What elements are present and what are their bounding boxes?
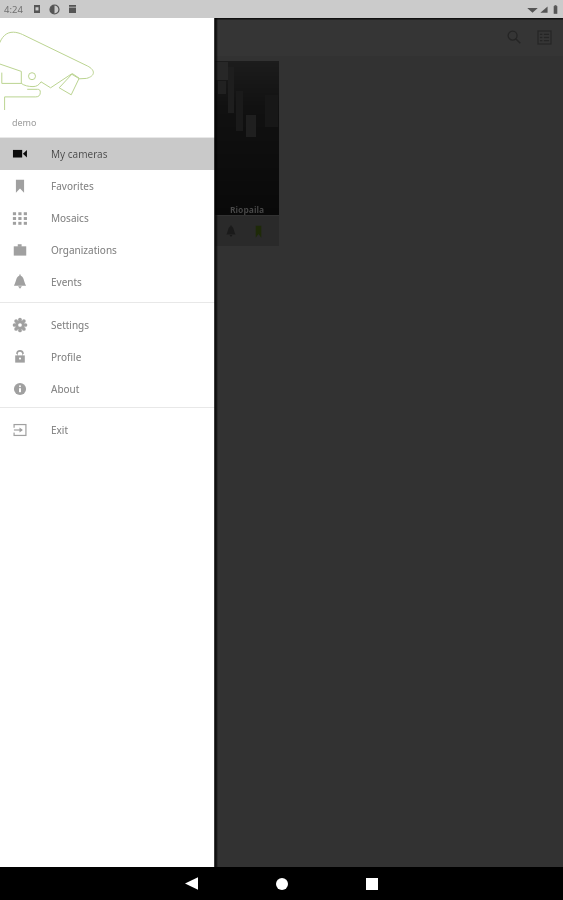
staticText: Mosaics <box>51 211 89 225</box>
staticText: About <box>51 382 80 396</box>
button[interactable]: Exit <box>0 414 215 446</box>
staticText: demo <box>12 116 37 128</box>
staticText: Profile <box>51 350 82 364</box>
staticText: My cameras <box>51 147 108 161</box>
staticText: Settings <box>51 318 90 332</box>
button[interactable]: Settings <box>0 309 215 341</box>
button[interactable]: Favorites <box>0 170 215 202</box>
staticText: 4:24 <box>4 3 23 16</box>
button[interactable]: About <box>0 373 215 405</box>
staticText: Events <box>51 275 82 289</box>
staticText: Favorites <box>51 179 94 193</box>
staticText: Organizations <box>51 243 117 257</box>
staticText: Exit <box>51 423 69 437</box>
button[interactable]: List view <box>526 19 562 55</box>
button[interactable]: Recents <box>351 867 393 900</box>
button[interactable]: Events <box>0 266 215 298</box>
button[interactable]: Riopaila <box>214 61 279 246</box>
button[interactable]: Search <box>496 19 532 55</box>
button[interactable]: Mosaics <box>0 202 215 234</box>
button[interactable]: Back <box>170 867 212 900</box>
button[interactable]: Profile <box>0 341 215 373</box>
button[interactable]: My cameras <box>0 138 215 170</box>
staticText: Riopaila <box>230 204 265 216</box>
button[interactable]: Organizations <box>0 234 215 266</box>
button[interactable]: Home <box>261 867 303 900</box>
